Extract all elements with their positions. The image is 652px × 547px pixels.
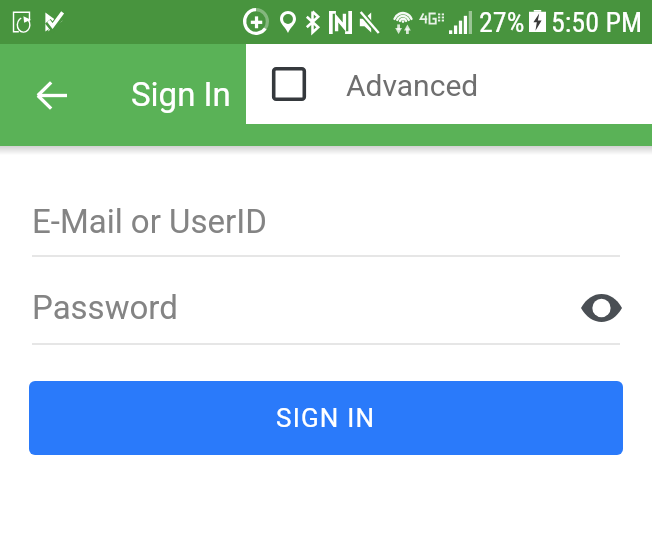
staticText: Advanced	[346, 68, 479, 103]
staticText: SIGN IN	[276, 403, 376, 433]
button[interactable]: Advanced	[246, 44, 652, 124]
button[interactable]: Back	[20, 64, 82, 126]
button[interactable]: Show password	[573, 284, 629, 332]
button[interactable]: SIGN IN	[29, 381, 623, 455]
staticText: 27%	[479, 6, 525, 39]
staticText: 5:50 PM	[551, 6, 643, 39]
staticText: E-Mail or UserID	[32, 202, 267, 241]
staticText: Sign In	[131, 75, 231, 114]
staticText: Password	[32, 288, 178, 327]
